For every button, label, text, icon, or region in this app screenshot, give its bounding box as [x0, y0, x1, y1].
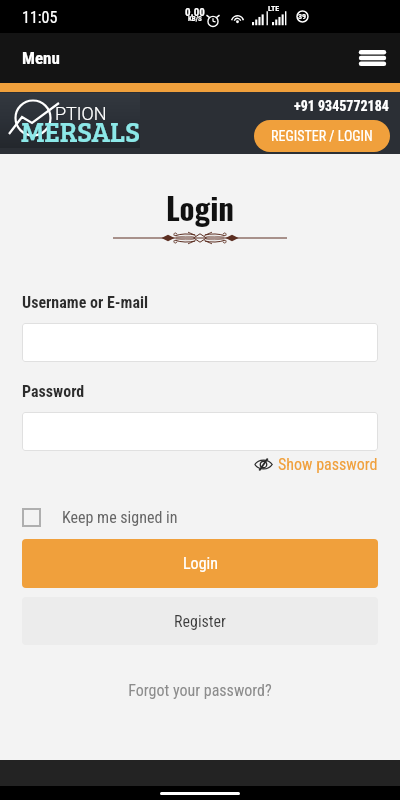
button[interactable]: REGISTER / LOGIN: [254, 120, 390, 152]
button[interactable]: Login: [22, 539, 378, 588]
staticText: Password: [22, 382, 85, 401]
staticText: Show password: [278, 455, 378, 474]
staticText: Register: [174, 612, 226, 631]
button[interactable]: Menu: [0, 33, 72, 83]
staticText: 39: [298, 12, 307, 21]
button[interactable]: Keep me signed in: [22, 508, 178, 527]
staticText: +91 9345772184: [294, 98, 389, 114]
button[interactable]: Show password: [254, 455, 378, 474]
staticText: Menu: [22, 48, 60, 68]
staticText: MERSALS: [21, 112, 140, 150]
button[interactable]: Open navigation menu: [352, 38, 392, 78]
button[interactable]: Forgot your password?: [0, 681, 400, 700]
button[interactable]: Register: [22, 597, 378, 645]
staticText: KB/S: [188, 15, 202, 23]
button[interactable]: Text input field: [22, 412, 378, 451]
staticText: PTION: [55, 103, 107, 124]
staticText: REGISTER / LOGIN: [271, 128, 373, 144]
staticText: Username or E-mail: [22, 293, 149, 312]
staticText: 0.00: [185, 6, 205, 19]
button[interactable]: Option Mersals logo: [0, 93, 140, 148]
staticText: LTE: [268, 4, 280, 13]
staticText: Login: [183, 554, 218, 573]
button[interactable]: Text input field: [22, 323, 378, 362]
staticText: 11:05: [22, 8, 58, 27]
staticText: Login: [0, 184, 400, 230]
staticText: Keep me signed in: [62, 508, 178, 527]
